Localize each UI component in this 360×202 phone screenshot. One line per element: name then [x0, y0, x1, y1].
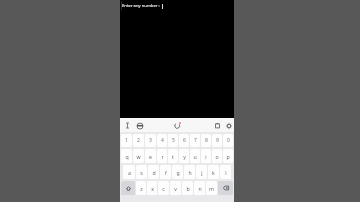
staticText: e — [149, 153, 152, 160]
staticText: 7 — [194, 137, 197, 144]
staticText: 1 — [125, 137, 128, 144]
button[interactable]: x — [147, 181, 157, 195]
button[interactable]: d — [148, 165, 159, 179]
staticText: f — [165, 169, 167, 176]
button[interactable]: 1 — [121, 134, 132, 147]
button[interactable]: 9 — [212, 134, 222, 147]
button[interactable]: r — [157, 149, 167, 163]
button[interactable]: Settings — [224, 121, 233, 130]
button[interactable]: Shift — [121, 181, 135, 195]
staticText: a — [128, 169, 131, 176]
button[interactable]: Clipboard — [213, 121, 222, 130]
button[interactable]: l — [220, 165, 231, 179]
staticText: u — [193, 153, 197, 160]
button[interactable]: f — [160, 165, 171, 179]
button[interactable]: c — [158, 181, 169, 195]
staticText: d — [152, 169, 156, 176]
staticText: Enter any number : — [122, 3, 160, 9]
staticText: p — [226, 153, 230, 160]
staticText: h — [188, 169, 192, 176]
button[interactable]: o — [212, 149, 222, 163]
button[interactable]: j — [196, 165, 207, 179]
button[interactable]: w — [133, 149, 144, 163]
staticText: z — [140, 185, 143, 192]
button[interactable]: 0 — [223, 134, 233, 147]
button[interactable]: Text editing — [123, 121, 132, 130]
button[interactable]: s — [136, 165, 147, 179]
button[interactable]: y — [179, 149, 189, 163]
staticText: x — [151, 185, 154, 192]
staticText: g — [176, 169, 180, 176]
button[interactable]: 7 — [190, 134, 200, 147]
button[interactable]: z — [136, 181, 146, 195]
button[interactable]: v — [170, 181, 181, 195]
button[interactable]: t — [168, 149, 178, 163]
button[interactable]: k — [208, 165, 219, 179]
button[interactable]: 6 — [179, 134, 189, 147]
button[interactable]: Sticker — [135, 121, 144, 130]
button[interactable]: h — [184, 165, 195, 179]
button[interactable]: u — [190, 149, 200, 163]
staticText: n — [198, 185, 202, 192]
button[interactable]: Handwriting — [172, 120, 182, 130]
button[interactable]: Backspace — [218, 181, 233, 195]
staticText: 6 — [183, 137, 186, 144]
staticText: 9 — [216, 137, 219, 144]
staticText: 8 — [205, 137, 208, 144]
staticText: o — [215, 153, 219, 160]
staticText: s — [140, 169, 143, 176]
staticText: v — [174, 185, 177, 192]
staticText: j — [201, 169, 203, 176]
staticText: y — [183, 153, 186, 160]
staticText: t — [172, 153, 174, 160]
button[interactable]: 3 — [145, 134, 156, 147]
staticText: m — [209, 185, 214, 192]
staticText: q — [125, 153, 129, 160]
button[interactable]: m — [206, 181, 217, 195]
button[interactable]: n — [194, 181, 205, 195]
button[interactable]: q — [121, 149, 132, 163]
button[interactable]: i — [201, 149, 211, 163]
button[interactable]: 5 — [168, 134, 178, 147]
button[interactable]: p — [223, 149, 233, 163]
staticText: 2 — [137, 137, 140, 144]
staticText: w — [136, 153, 141, 160]
staticText: c — [162, 185, 165, 192]
button[interactable]: b — [182, 181, 193, 195]
button[interactable]: e — [145, 149, 156, 163]
button[interactable]: 2 — [133, 134, 144, 147]
staticText: 5 — [172, 137, 175, 144]
button[interactable]: g — [172, 165, 183, 179]
button[interactable]: 8 — [201, 134, 211, 147]
staticText: 4 — [161, 137, 164, 144]
staticText: i — [205, 153, 207, 160]
staticText: k — [212, 169, 215, 176]
staticText: l — [225, 169, 227, 176]
button[interactable]: a — [123, 165, 135, 179]
staticText: r — [161, 153, 164, 160]
staticText: b — [186, 185, 190, 192]
staticText: 3 — [149, 137, 152, 144]
button[interactable]: 4 — [157, 134, 167, 147]
staticText: 0 — [227, 137, 230, 144]
